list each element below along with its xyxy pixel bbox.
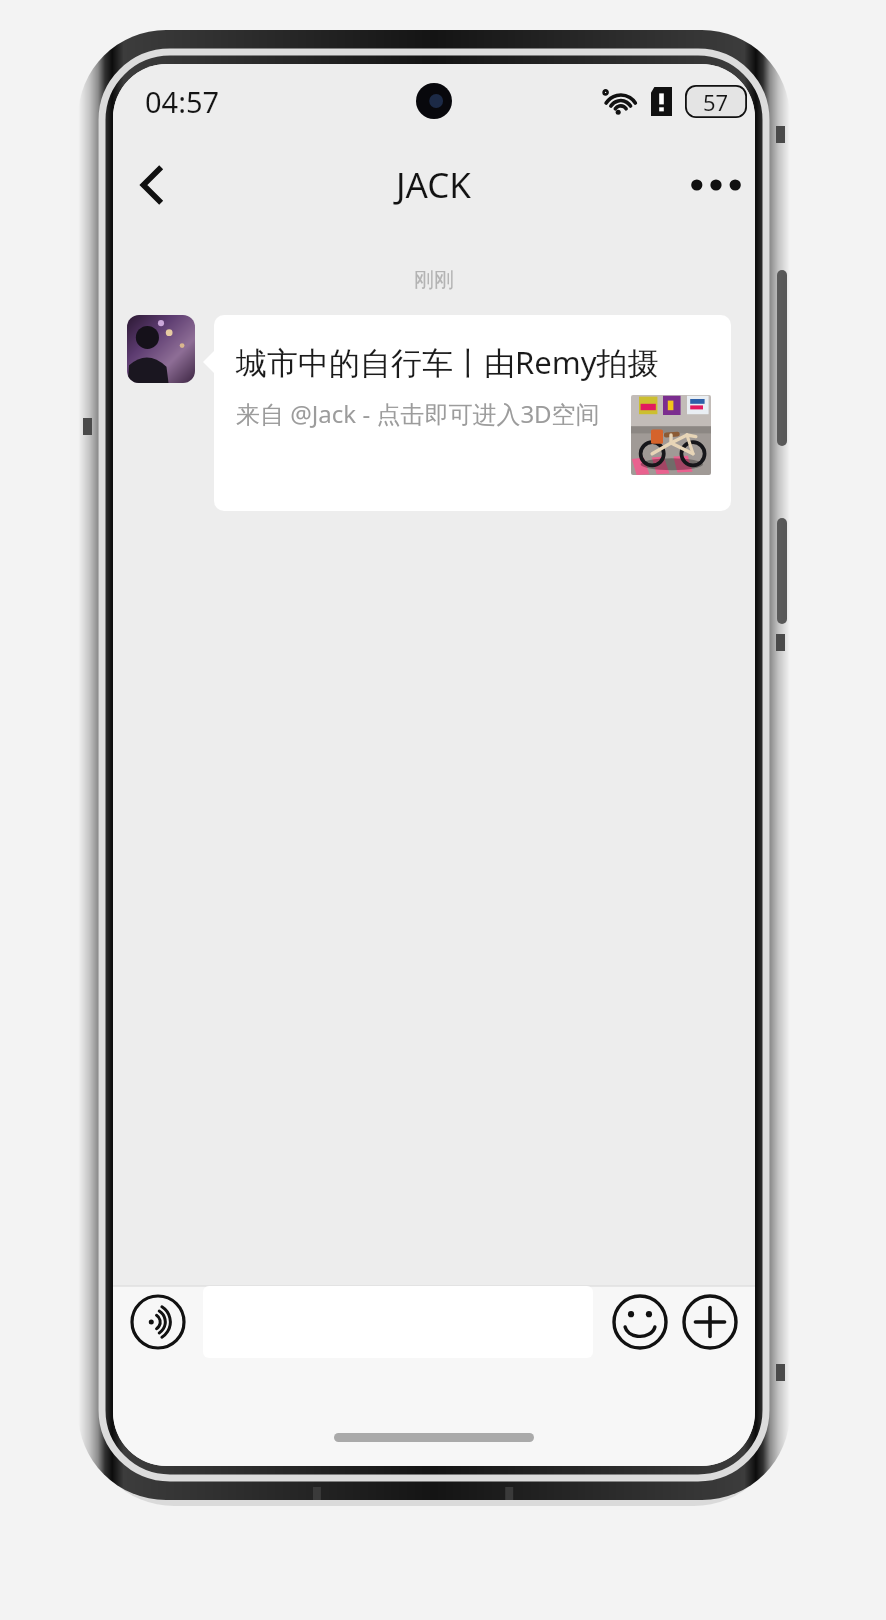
staticText: 57 [703,87,729,117]
button[interactable]: Emoji [611,1293,669,1351]
staticText: JACK [396,161,472,209]
staticText: 来自 @Jack - 点击即可进入3D空间 [236,397,615,430]
button[interactable]: Profile photo [127,315,195,383]
button[interactable]: Voice message [129,1293,187,1351]
staticText: 04:57 [145,82,220,121]
button[interactable]: More options [677,146,755,224]
button[interactable]: More [681,1293,739,1351]
staticText: 城市中的自行车丨由Remy拍摄 [236,341,659,383]
button[interactable]: Back [113,146,191,224]
staticText: 刚刚 [113,268,755,293]
button[interactable]: 城市中的自行车丨由Remy拍摄 [214,315,731,511]
